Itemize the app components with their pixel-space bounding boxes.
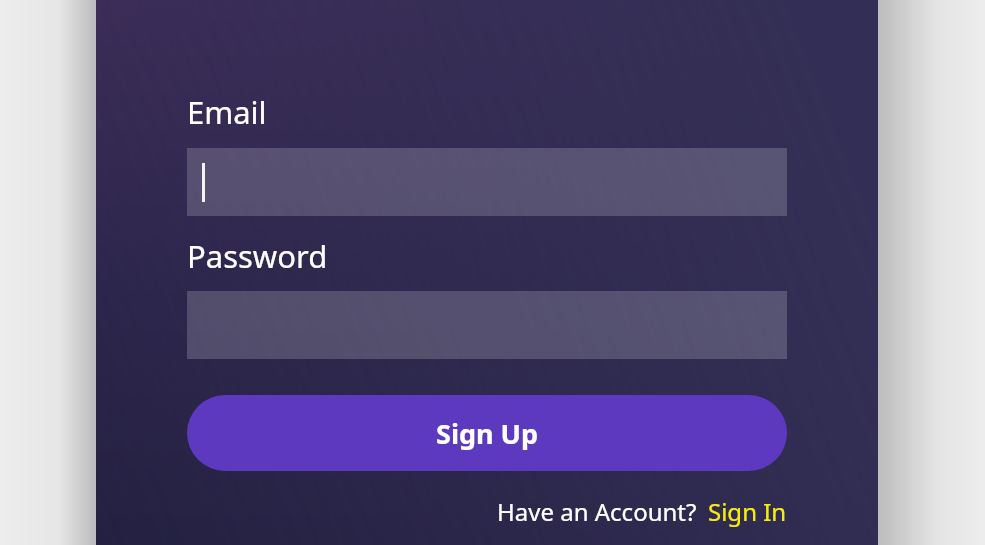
staticText: Email [187, 91, 267, 133]
staticText: Have an Account? [497, 495, 697, 528]
staticText: Sign Up [436, 415, 539, 452]
button[interactable]: Sign Up [187, 395, 787, 471]
button[interactable]: Sign In [708, 495, 787, 528]
staticText: Password [187, 235, 328, 277]
button[interactable] [187, 148, 787, 216]
staticText: Sign In [708, 495, 787, 528]
